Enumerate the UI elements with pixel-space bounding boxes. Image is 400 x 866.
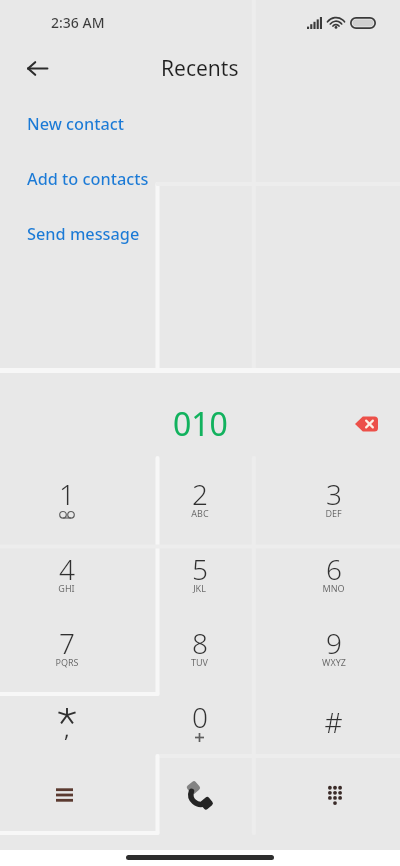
staticText: New contact: [27, 113, 125, 135]
staticText: GHI: [58, 582, 75, 594]
staticText: 6: [326, 550, 342, 588]
button[interactable]: 5: [133, 532, 266, 607]
staticText: 5: [192, 550, 208, 588]
button[interactable]: Add to contacts: [0, 157, 400, 201]
button[interactable]: 9: [267, 606, 400, 681]
staticText: 8: [192, 624, 208, 662]
button[interactable]: #: [267, 680, 400, 755]
staticText: 4: [59, 550, 75, 588]
staticText: 010: [173, 402, 228, 446]
button[interactable]: 0: [133, 680, 266, 755]
button[interactable]: 2: [133, 457, 266, 532]
button[interactable]: Send message: [0, 212, 400, 256]
button[interactable]: 1: [0, 457, 133, 532]
button[interactable]: 6: [267, 532, 400, 607]
staticText: 9: [326, 624, 342, 662]
staticText: Recents: [161, 54, 239, 83]
button[interactable]: 8: [133, 606, 266, 681]
button[interactable]: 3: [267, 457, 400, 532]
staticText: JKL: [193, 582, 206, 594]
staticText: ABC: [191, 507, 209, 519]
staticText: TUV: [191, 656, 208, 668]
staticText: #: [324, 703, 343, 741]
staticText: 0: [192, 698, 208, 736]
staticText: 1: [59, 475, 75, 513]
staticText: WXYZ: [322, 656, 346, 668]
button[interactable]: Menu: [0, 755, 133, 835]
button[interactable]: New contact: [0, 102, 400, 146]
staticText: ,: [64, 715, 70, 744]
staticText: Add to contacts: [27, 168, 149, 190]
staticText: 2:36 AM: [51, 13, 105, 32]
staticText: 2: [192, 475, 208, 513]
staticText: MNO: [322, 582, 345, 594]
staticText: DEF: [325, 507, 342, 519]
staticText: PQRS: [55, 656, 79, 668]
button[interactable]: ,: [0, 680, 133, 755]
button[interactable]: Back: [17, 48, 57, 88]
button[interactable]: 7: [0, 606, 133, 681]
staticText: 7: [59, 624, 75, 662]
button[interactable]: Backspace: [344, 402, 388, 446]
button[interactable]: Call: [133, 755, 266, 835]
button[interactable]: Dialpad: [267, 755, 400, 835]
button[interactable]: 4: [0, 532, 133, 607]
staticText: 3: [326, 475, 342, 513]
staticText: Send message: [27, 223, 140, 245]
